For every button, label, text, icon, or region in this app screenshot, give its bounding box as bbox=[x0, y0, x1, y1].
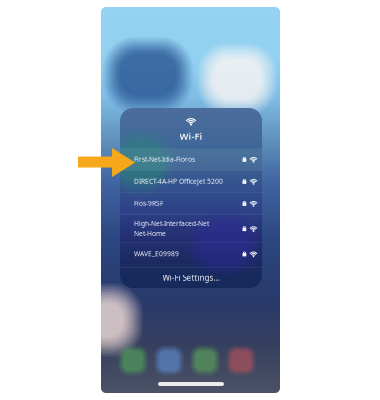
staticText: Wi-Fi Settings… bbox=[162, 272, 219, 283]
staticText: Fios-9RSF bbox=[134, 199, 163, 208]
button[interactable]: Fios-9RSF bbox=[120, 192, 262, 214]
button[interactable]: Wi-Fi Settings… bbox=[120, 267, 262, 288]
staticText: WAVE_E09989 bbox=[134, 249, 179, 258]
staticText: High-Net-Interfaced-Net bbox=[134, 219, 209, 228]
staticText: Wi-Fi bbox=[179, 130, 202, 142]
button[interactable]: First-Net-Idia-Fioros bbox=[120, 148, 262, 170]
staticText: First-Net-Idia-Fioros bbox=[134, 155, 195, 164]
staticText: Net-Home bbox=[134, 229, 166, 238]
staticText: DIRECT-4A-HP OfficeJet 5200 bbox=[134, 177, 223, 186]
button[interactable]: High-Net-Interfaced-Net bbox=[120, 214, 262, 242]
button[interactable]: DIRECT-4A-HP OfficeJet 5200 bbox=[120, 170, 262, 192]
button[interactable]: WAVE_E09989 bbox=[120, 243, 262, 264]
